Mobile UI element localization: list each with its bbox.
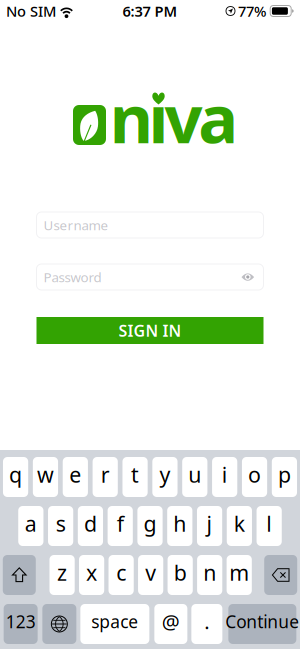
button[interactable]: 123 <box>4 604 38 644</box>
staticText: space <box>91 610 138 633</box>
button[interactable]: Next keyboard <box>42 604 76 644</box>
button[interactable]: m <box>227 555 252 595</box>
button[interactable]: s <box>48 506 73 546</box>
staticText: p <box>278 460 291 489</box>
button[interactable]: @ <box>154 604 187 644</box>
button[interactable]: . <box>191 604 222 644</box>
staticText: d <box>84 509 97 538</box>
button[interactable]: d <box>78 506 103 546</box>
button[interactable]: t <box>122 457 148 497</box>
button[interactable]: SIGN IN <box>36 317 263 344</box>
staticText: q <box>9 460 22 489</box>
button[interactable]: i <box>212 457 237 497</box>
staticText: z <box>57 558 67 587</box>
staticText: c <box>116 558 126 587</box>
button[interactable]: Show password <box>241 271 254 282</box>
staticText: f <box>117 509 124 538</box>
staticText: Username <box>43 216 108 234</box>
staticText: Continue <box>225 610 299 633</box>
button[interactable]: a <box>18 506 43 546</box>
button[interactable]: Delete <box>264 555 297 595</box>
staticText: s <box>56 509 66 538</box>
button[interactable]: z <box>49 555 75 595</box>
staticText: o <box>248 460 261 489</box>
button[interactable]: f <box>108 506 133 546</box>
staticText: n <box>203 558 216 587</box>
staticText: x <box>86 558 97 587</box>
button[interactable]: o <box>242 457 267 497</box>
staticText: y <box>159 460 170 489</box>
button[interactable]: v <box>138 555 163 595</box>
staticText: u <box>188 460 201 489</box>
staticText: 77% <box>238 1 266 21</box>
staticText: b <box>174 558 187 587</box>
button[interactable]: h <box>167 506 192 546</box>
staticText: 6:37 PM <box>122 1 177 21</box>
staticText: m <box>229 558 249 587</box>
staticText: . <box>204 608 209 635</box>
staticText: j <box>207 509 213 538</box>
button[interactable]: space <box>80 604 149 644</box>
button[interactable]: Shift <box>3 555 36 595</box>
button[interactable]: l <box>257 506 282 546</box>
button[interactable]: c <box>108 555 134 595</box>
staticText: 123 <box>6 610 36 633</box>
button[interactable]: g <box>137 506 163 546</box>
staticText: No SIM <box>6 1 56 21</box>
staticText: t <box>131 460 139 489</box>
button[interactable]: x <box>79 555 104 595</box>
button[interactable]: n <box>197 555 222 595</box>
button[interactable]: b <box>168 555 193 595</box>
staticText: a <box>25 509 37 538</box>
button[interactable]: p <box>272 457 297 497</box>
staticText: h <box>173 509 186 538</box>
button[interactable]: w <box>33 457 58 497</box>
staticText: w <box>37 460 54 489</box>
button[interactable]: j <box>197 506 222 546</box>
staticText: k <box>234 509 245 538</box>
staticText: SIGN IN <box>118 320 181 341</box>
button[interactable]: y <box>152 457 177 497</box>
staticText: l <box>266 509 272 538</box>
staticText: i <box>222 460 228 489</box>
staticText: Password <box>43 268 101 286</box>
staticText: @ <box>162 608 180 635</box>
button[interactable]: Continue <box>228 604 296 644</box>
button[interactable]: q <box>3 457 28 497</box>
staticText: g <box>143 509 156 538</box>
staticText: e <box>69 460 81 489</box>
button[interactable]: u <box>182 457 207 497</box>
button[interactable]: e <box>63 457 88 497</box>
button[interactable]: k <box>227 506 252 546</box>
button[interactable]: r <box>93 457 118 497</box>
staticText: nıva <box>110 73 238 162</box>
staticText: r <box>101 460 110 489</box>
staticText: v <box>145 558 156 587</box>
